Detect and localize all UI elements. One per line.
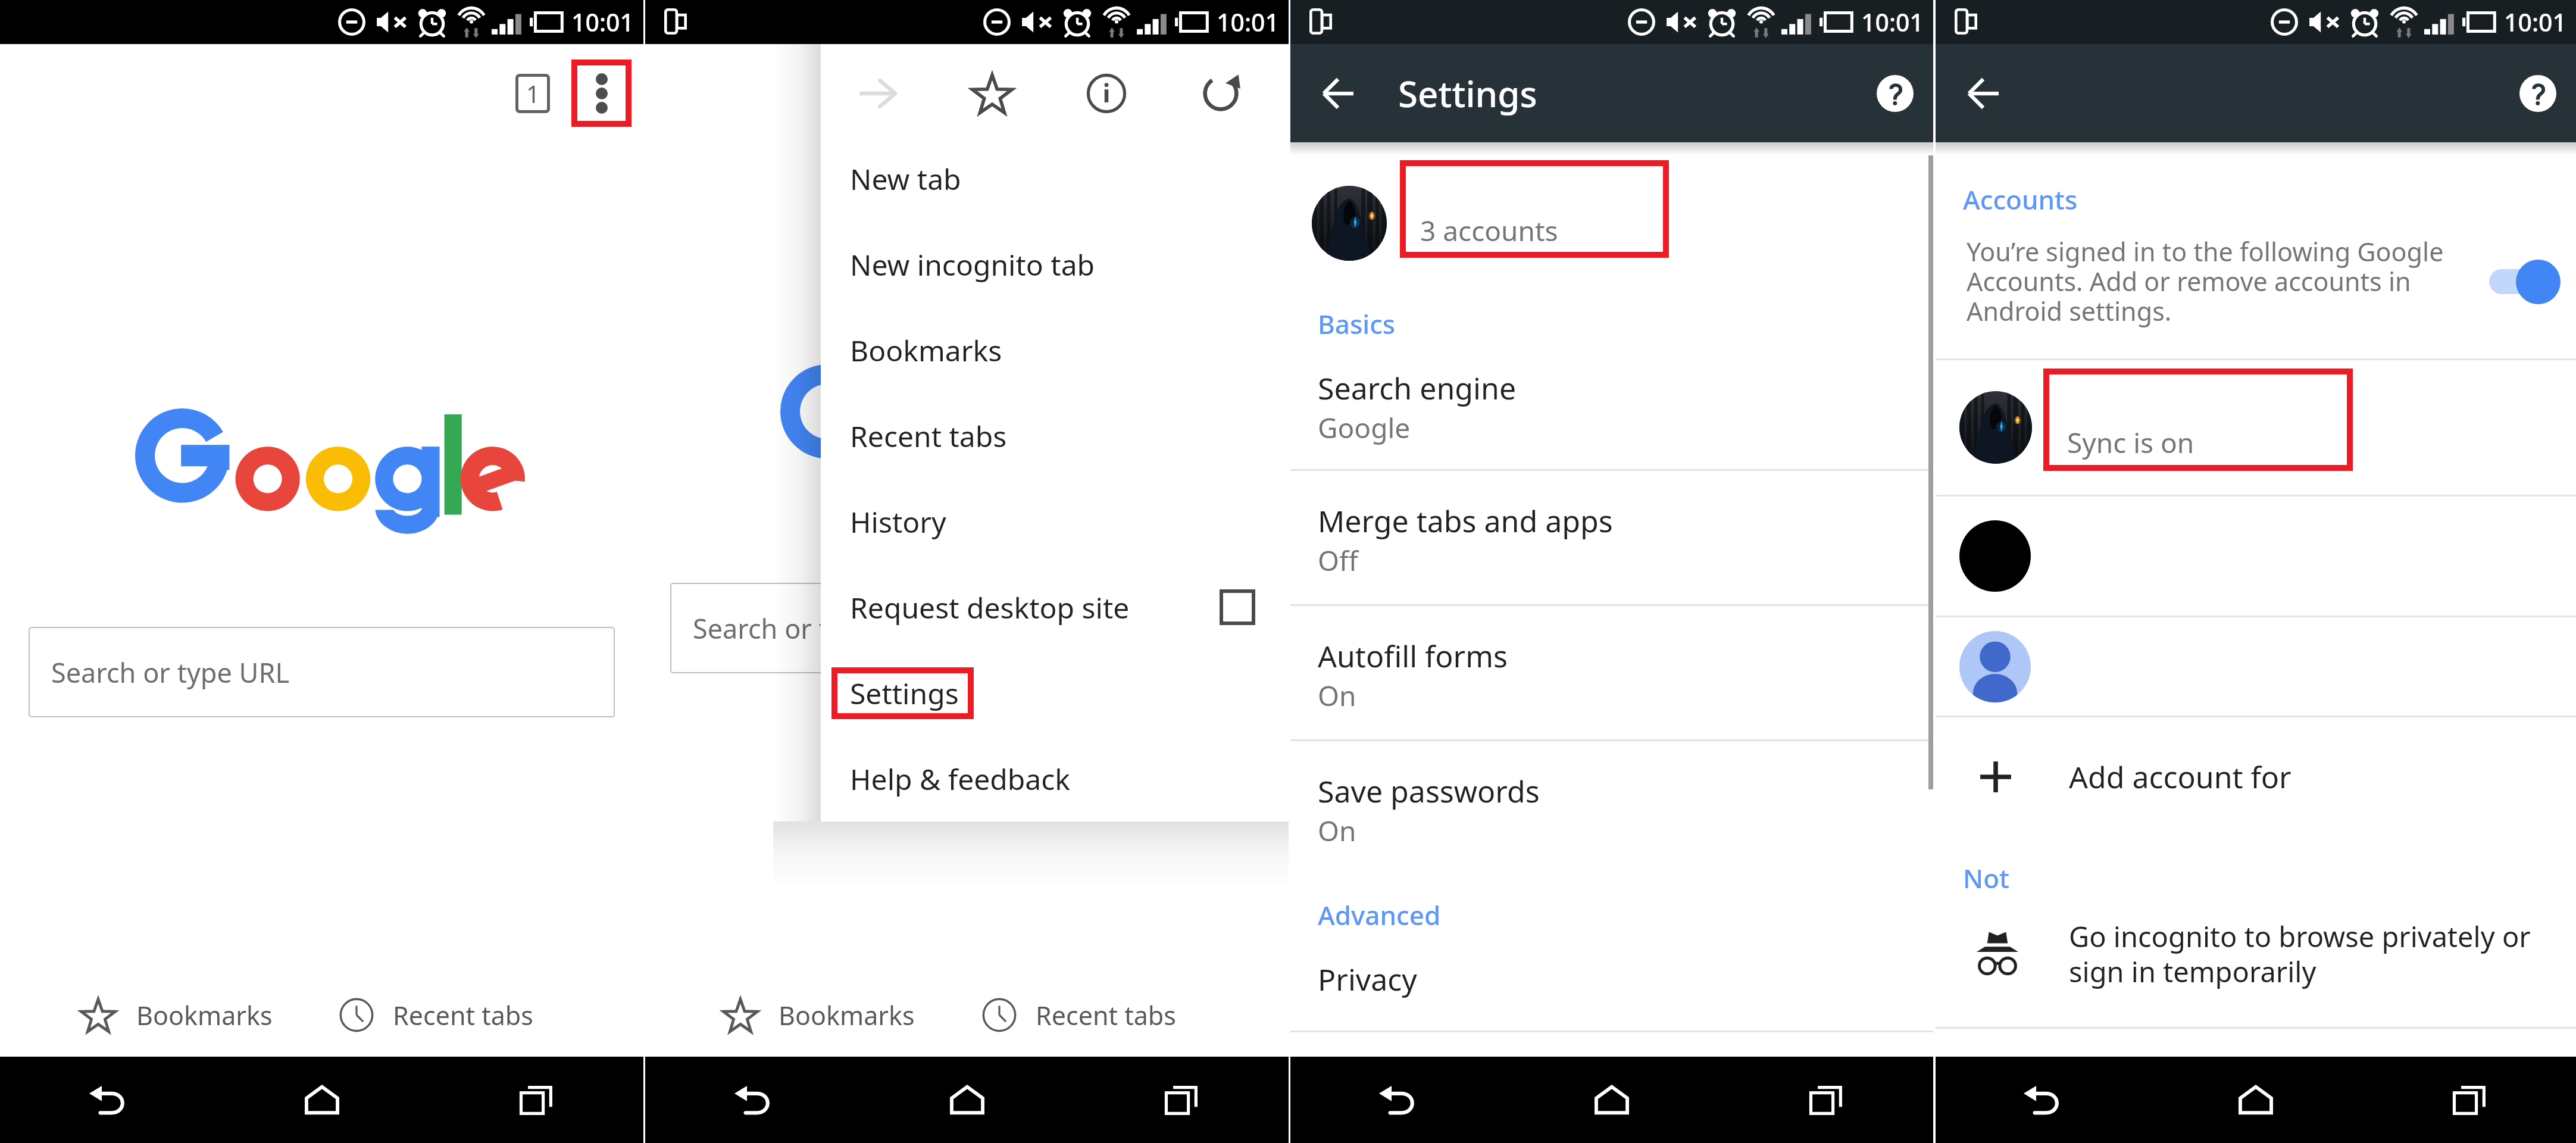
- staticText: Help & feedback: [850, 760, 1070, 798]
- button[interactable]: New incognito tab: [821, 221, 1289, 307]
- staticText: Autofill forms: [1318, 636, 1508, 676]
- staticText: New incognito tab: [850, 245, 1095, 284]
- button[interactable]: Reload: [1164, 51, 1278, 136]
- button[interactable]: Search or type URL: [670, 583, 1256, 673]
- button[interactable]: More options: [571, 60, 632, 127]
- button[interactable]: Merge tabs and apps: [1290, 471, 1933, 604]
- button[interactable]: Home: [860, 1057, 1074, 1143]
- button[interactable]: Navigate up: [1290, 44, 1387, 142]
- staticText: History: [850, 502, 946, 541]
- button[interactable]: Recent apps: [429, 1057, 643, 1143]
- button[interactable]: Request desktop site: [821, 564, 1289, 650]
- staticText: Google: [1318, 409, 1411, 446]
- button[interactable]: Save passwords: [1290, 741, 1933, 875]
- staticText: Bookmarks: [850, 331, 1002, 370]
- staticText: Recent tabs: [1036, 998, 1176, 1033]
- staticText: Sync is on: [2067, 424, 2194, 461]
- button[interactable]: Recent tabs: [821, 393, 1289, 479]
- button[interactable]: Autofill forms: [1290, 606, 1933, 739]
- staticText: Search engine: [1318, 368, 1517, 408]
- button[interactable]: 3 accounts: [1290, 155, 1933, 300]
- button[interactable]: Settings: [821, 650, 1289, 736]
- staticText: Recent tabs: [393, 998, 533, 1033]
- button[interactable]: [1936, 617, 2576, 716]
- staticText: Privacy: [1318, 959, 1417, 1000]
- button[interactable]: Page info: [1049, 51, 1164, 136]
- button[interactable]: Back: [0, 1057, 215, 1143]
- staticText: Not: [1963, 860, 2009, 896]
- button[interactable]: Bookmarks: [645, 979, 967, 1051]
- button[interactable]: Home: [215, 1057, 429, 1143]
- button[interactable]: History: [821, 479, 1289, 564]
- button[interactable]: [1936, 496, 2576, 616]
- staticText: Bookmarks: [779, 998, 915, 1033]
- button[interactable]: Recent apps: [1074, 1057, 1289, 1143]
- button[interactable]: Help & feedback: [1857, 44, 1933, 142]
- staticText: Off: [1318, 542, 1358, 579]
- button[interactable]: Back: [1936, 1057, 2149, 1143]
- staticText: 10:01: [571, 5, 634, 39]
- button[interactable]: Recent tabs: [321, 979, 643, 1051]
- button[interactable]: Add account for: [1936, 717, 2576, 836]
- button[interactable]: Go incognito to browse privately or sign…: [1936, 896, 2576, 1027]
- staticText: On: [1318, 677, 1356, 714]
- button[interactable]: Home: [1505, 1057, 1719, 1143]
- button[interactable]: Bookmarks: [0, 979, 321, 1051]
- button[interactable]: Back: [1290, 1057, 1505, 1143]
- staticText: Merge tabs and apps: [1318, 501, 1613, 541]
- button[interactable]: Recent apps: [1719, 1057, 1933, 1143]
- button[interactable]: Navigate up: [1936, 44, 2032, 142]
- staticText: Settings: [1398, 69, 1537, 118]
- staticText: You’re signed in to the following Google…: [1967, 234, 2449, 329]
- staticText: Go incognito to browse privately or sign…: [2069, 917, 2539, 990]
- button[interactable]: Bookmark this page: [935, 51, 1049, 136]
- button[interactable]: Home: [2149, 1057, 2362, 1143]
- staticText: Bookmarks: [136, 998, 273, 1033]
- staticText: 1: [526, 77, 540, 110]
- button[interactable]: Search engine: [1290, 342, 1933, 469]
- button[interactable]: Bookmarks: [821, 307, 1289, 393]
- staticText: Request desktop site: [850, 588, 1130, 627]
- button[interactable]: Tabs: [503, 60, 562, 127]
- button[interactable]: Sync is on: [1936, 360, 2576, 495]
- staticText: Save passwords: [1318, 771, 1540, 811]
- staticText: Basics: [1318, 306, 1396, 342]
- button[interactable]: Help & feedback: [821, 736, 1289, 822]
- staticText: 10:01: [2504, 5, 2566, 39]
- button[interactable]: New tab: [821, 136, 1289, 221]
- staticText: 3 accounts: [1420, 212, 1558, 249]
- button[interactable]: Recent tabs: [967, 979, 1289, 1051]
- staticText: 10:01: [1217, 5, 1279, 39]
- staticText: Recent tabs: [850, 417, 1007, 455]
- button[interactable]: Help & feedback: [2500, 44, 2576, 142]
- staticText: 10:01: [1861, 5, 1924, 39]
- button[interactable]: Forward: [821, 51, 935, 136]
- staticText: Accounts: [1963, 182, 2078, 217]
- button[interactable]: Recent apps: [2362, 1057, 2576, 1143]
- staticText: New tab: [850, 160, 961, 198]
- button[interactable]: Privacy: [1290, 933, 1933, 1030]
- staticText: On: [1318, 812, 1356, 850]
- button[interactable]: You’re signed in to the following Google…: [1936, 217, 2576, 358]
- staticText: Search or type URL: [693, 610, 931, 647]
- staticText: Settings: [850, 674, 959, 713]
- staticText: Search or type URL: [51, 654, 290, 691]
- button[interactable]: Back: [645, 1057, 860, 1143]
- staticText: Add account for: [2069, 757, 2291, 797]
- staticText: Advanced: [1318, 897, 1441, 933]
- button[interactable]: Search or type URL: [29, 627, 615, 717]
